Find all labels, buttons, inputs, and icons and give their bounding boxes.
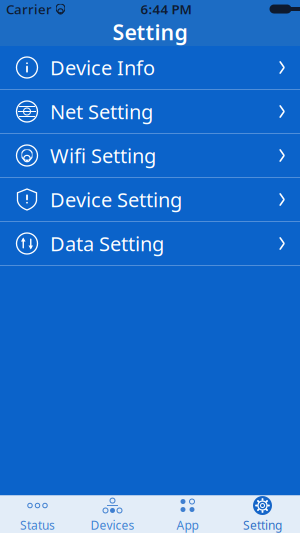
button[interactable]: Device Info [0, 46, 300, 89]
staticText: Setting [112, 18, 187, 46]
staticText: Data Setting [50, 230, 164, 257]
staticText: Net Setting [50, 98, 153, 125]
staticText: App [176, 517, 198, 533]
button[interactable]: Device Setting [0, 178, 300, 221]
button[interactable]: App [150, 496, 225, 533]
staticText: Device Info [50, 54, 155, 81]
staticText: 6:44 PM [140, 0, 191, 18]
button[interactable]: Devices [75, 496, 150, 533]
staticText: Carrier [6, 0, 52, 18]
staticText: Setting [243, 517, 282, 533]
button[interactable]: Data Setting [0, 222, 300, 265]
button[interactable]: Wifi Setting [0, 134, 300, 177]
button[interactable]: Net Setting [0, 90, 300, 133]
staticText: Device Setting [50, 186, 182, 213]
staticText: Wifi Setting [50, 142, 156, 169]
button[interactable]: Setting [225, 496, 300, 533]
staticText: Devices [90, 517, 134, 533]
button[interactable]: Status [0, 496, 75, 533]
staticText: Status [20, 517, 55, 533]
